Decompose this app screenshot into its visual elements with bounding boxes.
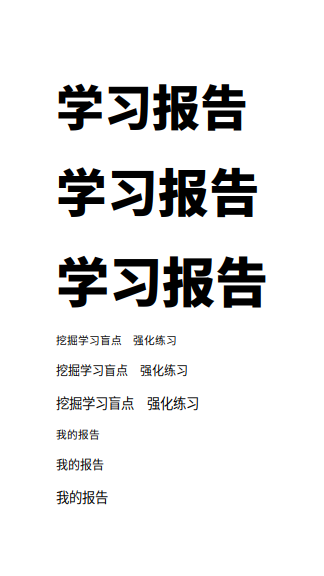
staticText: 我的报告: [56, 426, 100, 441]
staticText: 挖掘学习盲点 强化练习: [56, 361, 188, 379]
staticText: 我的报告: [56, 487, 108, 506]
staticText: 学习报告: [56, 241, 268, 318]
staticText: 学习报告: [56, 153, 260, 227]
staticText: 挖掘学习盲点 强化练习: [56, 332, 177, 347]
staticText: 我的报告: [56, 455, 104, 473]
staticText: 学习报告: [56, 70, 248, 139]
staticText: 挖掘学习盲点 强化练习: [56, 393, 199, 412]
